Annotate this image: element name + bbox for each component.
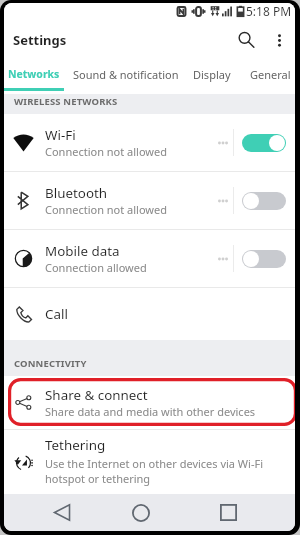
staticText: Bluetooth	[45, 184, 108, 202]
staticText: Call	[45, 305, 68, 323]
staticText: Share & connect	[45, 386, 148, 404]
button[interactable]: Tethering	[4, 430, 295, 494]
staticText: Connection allowed	[45, 260, 147, 275]
staticText: Settings	[13, 31, 67, 49]
button[interactable]: Toggle Mobile data	[233, 230, 295, 287]
staticText: Tethering	[45, 436, 106, 454]
staticText: General	[250, 67, 291, 82]
staticText: Use the Internet on other devices via Wi…	[45, 456, 285, 486]
button[interactable]: Search	[228, 22, 264, 58]
staticText: Display	[193, 67, 231, 82]
button[interactable]: Settings for Wi-Fi	[206, 114, 232, 171]
button[interactable]: Toggle Wi-Fi	[233, 114, 295, 171]
button[interactable]: Mobile data	[4, 230, 295, 287]
button[interactable]: More options	[264, 25, 294, 55]
button[interactable]: Bluetooth	[4, 172, 295, 229]
staticText: WIRELESS NETWORKS	[14, 95, 118, 108]
staticText: CONNECTIVITY	[14, 357, 87, 370]
button[interactable]: Settings for Mobile data	[206, 230, 232, 287]
staticText: Wi-Fi	[45, 126, 76, 144]
staticText: Connection not allowed	[45, 202, 167, 217]
button[interactable]: Toggle Bluetooth	[233, 172, 295, 229]
button[interactable]: Back	[31, 494, 93, 531]
staticText: Connection not allowed	[45, 144, 167, 159]
staticText: Mobile data	[45, 242, 120, 260]
button[interactable]: Recent apps	[188, 494, 268, 531]
button[interactable]: General	[236, 60, 295, 88]
button[interactable]: Call	[4, 288, 295, 340]
button[interactable]: Wi-Fi	[4, 114, 295, 171]
button[interactable]: Display	[188, 60, 236, 88]
button[interactable]: Sound & notification	[64, 60, 188, 88]
button[interactable]: Networks	[4, 60, 64, 88]
staticText: Networks	[8, 67, 60, 81]
button[interactable]: Share & connect	[4, 376, 295, 429]
staticText: Share data and media with other devices	[45, 404, 256, 419]
button[interactable]: Home	[93, 494, 188, 531]
button[interactable]: Settings for Bluetooth	[206, 172, 232, 229]
staticText: 5:18 PM	[246, 3, 292, 19]
staticText: Sound & notification	[73, 67, 179, 82]
